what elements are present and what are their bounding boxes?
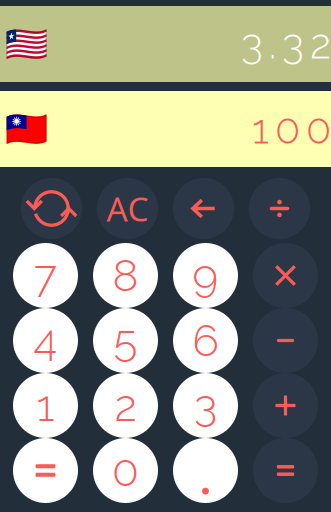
button[interactable]: 0 [93,438,158,503]
button[interactable]: 3 [173,373,238,438]
staticText: 🇱🇷 [4,24,47,64]
staticText: AC [106,186,148,231]
button[interactable]: 9 [173,243,238,308]
button[interactable]: 4 [13,308,78,373]
button[interactable]: Backspace [173,178,234,239]
staticText: 6 [192,315,218,366]
button[interactable]: Plus [253,373,318,438]
button[interactable]: Equals [13,438,78,503]
staticText: 3 [194,380,217,431]
button[interactable]: All clear [97,178,158,239]
staticText: 🇹🇼 [4,109,47,149]
staticText: 5 [113,315,137,366]
staticText: 9 [192,250,218,301]
staticText: 100 [252,105,331,153]
staticText: 4 [33,315,57,366]
button[interactable]: Multiply [253,243,318,308]
button[interactable]: 2 [93,373,158,438]
button[interactable]: 🇹🇼 [0,91,331,167]
button[interactable]: Swap currencies [21,178,82,239]
staticText: 1 [36,380,54,431]
button[interactable]: 6 [173,308,238,373]
button[interactable]: Minus [253,308,318,373]
staticText: 7 [33,250,57,301]
staticText: 3.32 [241,20,331,68]
staticText: 2 [114,380,136,431]
button[interactable]: Equals [253,438,318,503]
button[interactable]: 8 [93,243,158,308]
button[interactable]: 1 [13,373,78,438]
button[interactable]: Divide [249,178,310,239]
button[interactable]: 🇱🇷 [0,6,331,82]
button[interactable]: 5 [93,308,158,373]
button[interactable]: Decimal point [173,438,238,503]
staticText: 0 [112,445,139,496]
button[interactable]: 7 [13,243,78,308]
staticText: 8 [112,250,138,301]
